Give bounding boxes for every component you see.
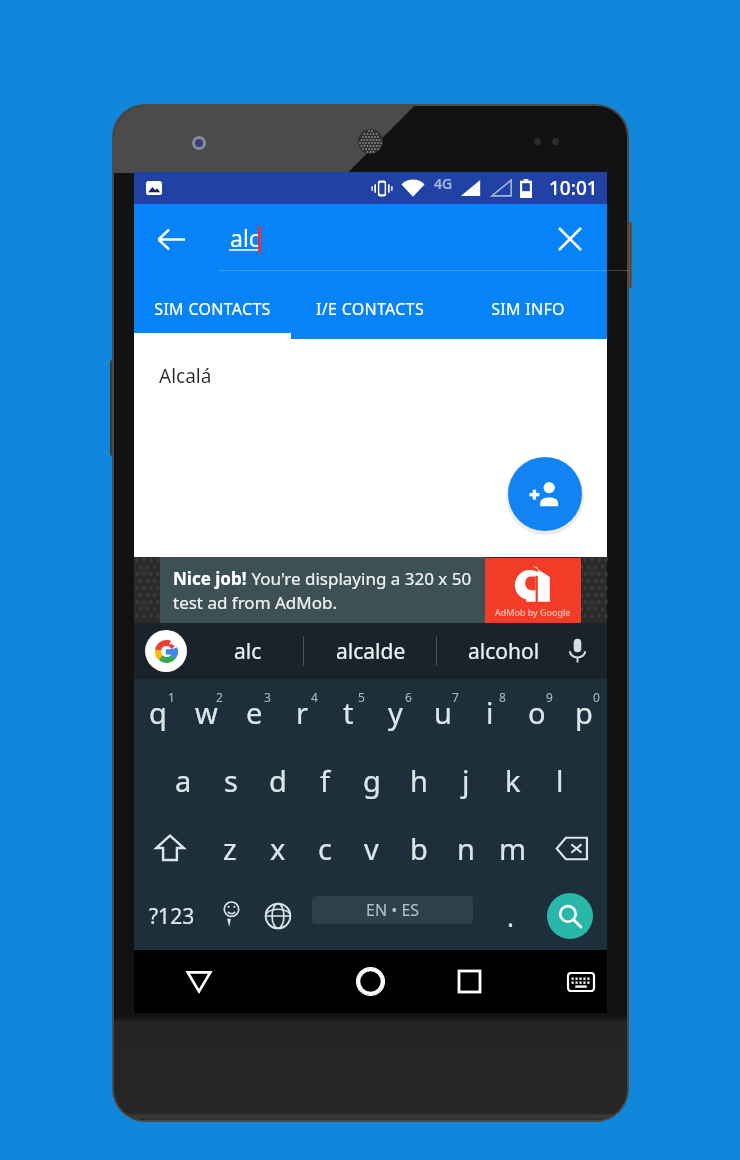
staticText: n: [457, 829, 475, 868]
staticText: a: [175, 761, 192, 800]
button[interactable]: q: [134, 679, 182, 746]
button[interactable]: alc: [192, 623, 304, 679]
staticText: 6: [405, 689, 412, 705]
staticText: SIM CONTACTS: [154, 298, 271, 320]
button[interactable]: y: [372, 679, 419, 746]
staticText: 4: [311, 689, 318, 705]
staticText: l: [556, 761, 564, 800]
button[interactable]: Clear search: [546, 215, 594, 263]
button[interactable]: Voice input: [552, 623, 602, 679]
staticText: 8: [499, 689, 506, 705]
button[interactable]: Shift: [134, 814, 206, 882]
button[interactable]: i: [466, 679, 513, 746]
button[interactable]: p: [560, 679, 607, 746]
staticText: z: [223, 829, 237, 868]
staticText: AdMob by Google: [495, 606, 571, 618]
button[interactable]: o: [513, 679, 560, 746]
button[interactable]: z: [206, 814, 254, 882]
button[interactable]: u: [419, 679, 466, 746]
button[interactable]: Search: [547, 893, 593, 939]
staticText: Alcalá: [159, 363, 212, 389]
staticText: 0: [593, 689, 600, 705]
staticText: g: [363, 761, 381, 800]
button[interactable]: Nice job!: [134, 557, 607, 623]
button[interactable]: a: [159, 746, 207, 814]
staticText: SIM INFO: [491, 298, 565, 320]
staticText: ?123: [149, 902, 195, 931]
staticText: w: [195, 693, 218, 732]
staticText: t: [343, 693, 354, 732]
button[interactable]: m: [489, 814, 536, 882]
staticText: test ad from AdMob.: [173, 591, 337, 614]
staticText: 10:01: [549, 175, 598, 201]
staticText: 9: [546, 689, 553, 705]
button[interactable]: Add contact: [508, 457, 582, 531]
button[interactable]: SIM INFO: [449, 281, 607, 339]
staticText: c: [318, 829, 332, 868]
button[interactable]: e: [230, 679, 278, 746]
staticText: x: [270, 829, 286, 868]
staticText: alcohol: [468, 637, 540, 666]
staticText: h: [410, 761, 428, 800]
staticText: 5: [358, 689, 365, 705]
button[interactable]: h: [395, 746, 442, 814]
staticText: f: [320, 761, 330, 800]
staticText: y: [388, 693, 403, 732]
staticText: e: [246, 693, 263, 732]
button[interactable]: k: [489, 746, 536, 814]
button[interactable]: Back: [134, 950, 304, 1013]
staticText: v: [364, 829, 379, 868]
button[interactable]: d: [254, 746, 301, 814]
staticText: .: [507, 899, 514, 934]
staticText: 1: [168, 689, 175, 705]
staticText: Nice job!: [173, 567, 247, 590]
staticText: k: [505, 761, 521, 800]
staticText: alcalde: [336, 637, 406, 666]
button[interactable]: v: [348, 814, 395, 882]
button[interactable]: SIM CONTACTS: [134, 281, 291, 339]
button[interactable]: I/E CONTACTS: [291, 281, 449, 339]
staticText: m: [499, 829, 527, 868]
button[interactable]: g: [348, 746, 395, 814]
button[interactable]: r: [278, 679, 325, 746]
button[interactable]: l: [536, 746, 583, 814]
button[interactable]: Home: [304, 950, 436, 1013]
button[interactable]: Show keyboard: [536, 950, 607, 1013]
button[interactable]: Switch language: [252, 882, 304, 950]
staticText: b: [410, 829, 428, 868]
button[interactable]: alcohol: [437, 623, 570, 679]
button[interactable]: Google search: [140, 623, 192, 679]
button[interactable]: .: [486, 882, 534, 950]
staticText: I/E CONTACTS: [316, 298, 424, 320]
button[interactable]: Emoji: [210, 882, 252, 950]
staticText: r: [296, 693, 308, 732]
button[interactable]: j: [442, 746, 489, 814]
staticText: u: [434, 693, 452, 732]
button[interactable]: f: [301, 746, 348, 814]
button[interactable]: EN • ES: [312, 896, 473, 924]
button[interactable]: Back: [147, 215, 195, 263]
staticText: alc: [230, 222, 260, 253]
staticText: 4G: [434, 174, 453, 193]
button[interactable]: t: [325, 679, 372, 746]
button[interactable]: ?123: [134, 882, 210, 950]
button[interactable]: Backspace: [536, 814, 607, 882]
staticText: q: [149, 693, 167, 732]
staticText: d: [269, 761, 287, 800]
button[interactable]: s: [207, 746, 254, 814]
button[interactable]: alcalde: [304, 623, 437, 679]
staticText: 2: [216, 689, 223, 705]
staticText: s: [224, 761, 238, 800]
button[interactable]: b: [395, 814, 442, 882]
staticText: j: [462, 761, 470, 800]
button[interactable]: n: [442, 814, 489, 882]
button[interactable]: x: [254, 814, 301, 882]
button[interactable]: Recent apps: [436, 950, 536, 1013]
staticText: EN • ES: [366, 899, 420, 921]
button[interactable]: w: [182, 679, 230, 746]
staticText: alc: [234, 637, 262, 666]
staticText: o: [528, 693, 546, 732]
button[interactable]: c: [301, 814, 348, 882]
staticText: p: [575, 693, 593, 732]
staticText: 7: [452, 689, 459, 705]
